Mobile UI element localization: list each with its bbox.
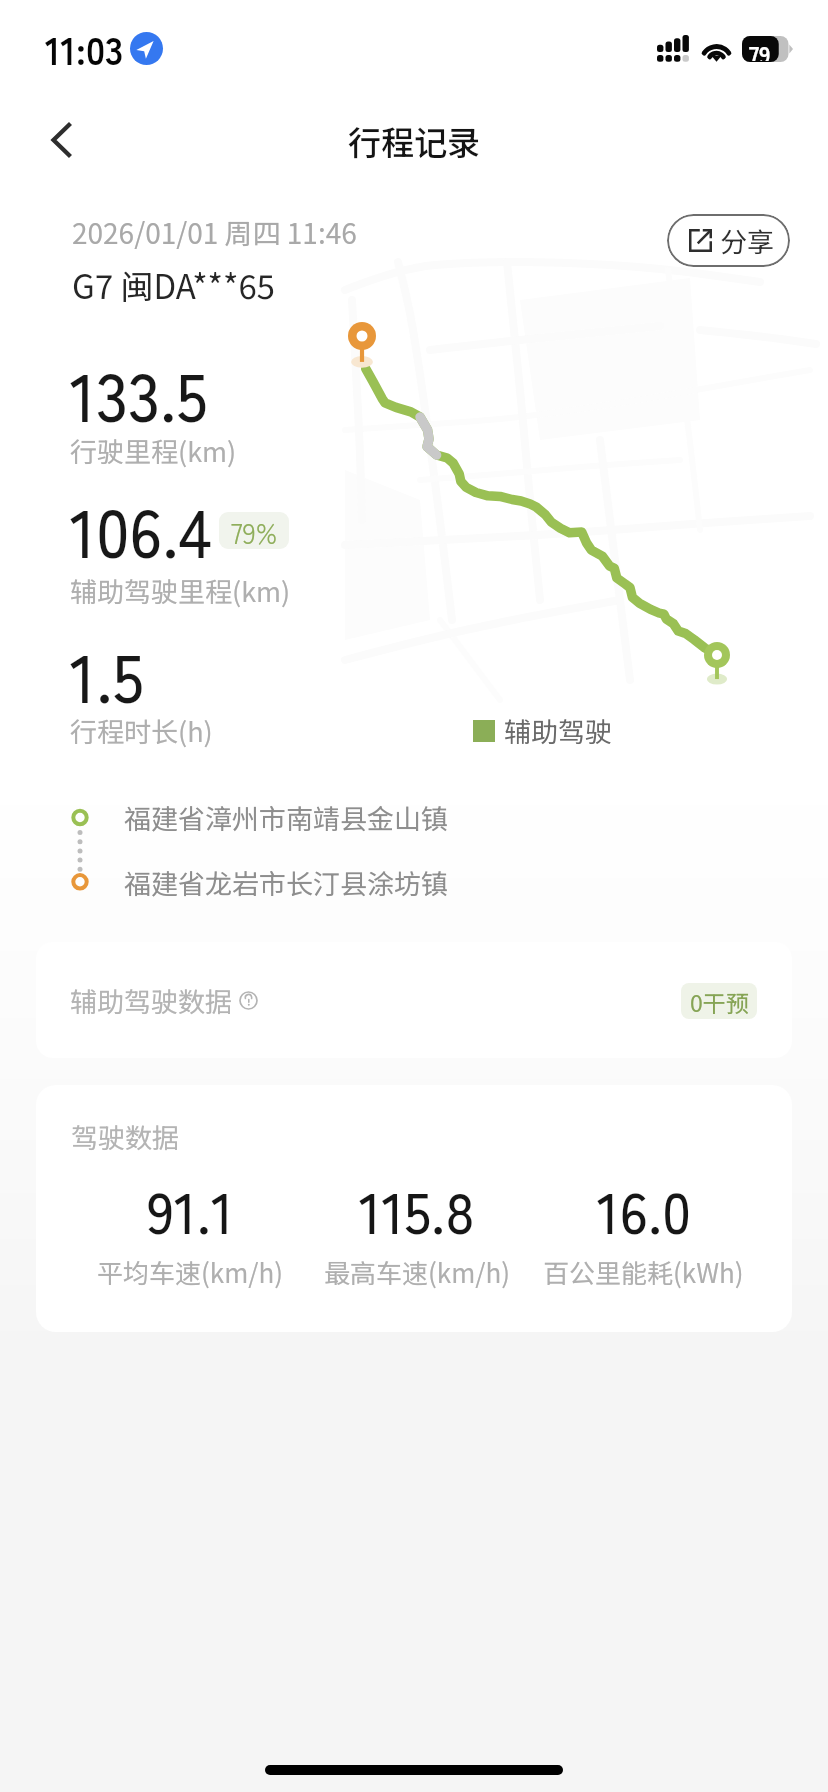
staticText: 福建省漳州市南靖县金山镇 bbox=[124, 798, 448, 837]
staticText: 平均车速(km/h) bbox=[97, 1253, 283, 1291]
staticText: 106.4 bbox=[70, 481, 212, 577]
button[interactable]: Back bbox=[30, 108, 94, 172]
staticText: 百公里能耗(kWh) bbox=[543, 1253, 744, 1291]
staticText: 行程时长(h) bbox=[70, 711, 213, 750]
staticText: 115.8 bbox=[359, 1168, 475, 1251]
staticText: 辅助驾驶里程(km) bbox=[70, 571, 291, 610]
staticText: 辅助驾驶 bbox=[504, 711, 612, 750]
staticText: 行程记录 bbox=[348, 117, 480, 165]
staticText: 0干预 bbox=[690, 985, 749, 1018]
staticText: 辅助驾驶数据 bbox=[70, 981, 232, 1020]
button[interactable]: 分享 bbox=[667, 214, 790, 267]
staticText: 行驶里程(km) bbox=[70, 431, 237, 470]
staticText: 91.1 bbox=[147, 1168, 234, 1251]
button[interactable]: 辅助驾驶数据 bbox=[36, 942, 792, 1058]
staticText: 福建省龙岩市长汀县涂坊镇 bbox=[124, 863, 448, 902]
staticText: 79% bbox=[231, 512, 278, 549]
staticText: 133.5 bbox=[70, 345, 208, 441]
staticText: G7 闽DA***65 bbox=[72, 261, 276, 309]
staticText: 1.5 bbox=[70, 626, 144, 722]
staticText: 驾驶数据 bbox=[71, 1117, 179, 1156]
staticText: 16.0 bbox=[597, 1168, 691, 1251]
staticText: 分享 bbox=[720, 221, 774, 260]
staticText: 79 bbox=[749, 36, 771, 61]
staticText: 最高车速(km/h) bbox=[324, 1253, 510, 1291]
button[interactable]: 驾驶数据 bbox=[36, 1085, 792, 1332]
staticText: 11:03 bbox=[45, 21, 124, 76]
staticText: 2026/01/01 周四 11:46 bbox=[72, 212, 357, 253]
